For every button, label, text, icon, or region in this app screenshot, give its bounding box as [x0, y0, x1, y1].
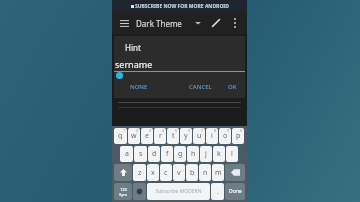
staticText: s	[139, 149, 143, 159]
button[interactable]: 8	[206, 128, 218, 144]
button[interactable]: Backspace	[225, 164, 245, 181]
button[interactable]: 3	[141, 128, 153, 144]
staticText: e	[145, 131, 149, 141]
staticText: g	[178, 149, 183, 159]
button[interactable]: More options	[228, 16, 242, 30]
button[interactable]: n	[199, 164, 211, 181]
button[interactable]: Settings	[133, 183, 146, 200]
button[interactable]: 4	[154, 128, 166, 144]
button[interactable]: d	[148, 146, 160, 162]
staticText: k	[217, 149, 221, 159]
staticText: NONE	[130, 83, 148, 91]
staticText: Subscribe MODERN	[155, 188, 202, 195]
staticText: o	[223, 131, 228, 141]
staticText: CANCEL	[189, 83, 212, 91]
staticText: 8	[214, 128, 217, 133]
staticText: username	[118, 92, 147, 100]
staticText: 1	[123, 128, 126, 133]
staticText: m	[215, 168, 222, 178]
button[interactable]: Dark Theme	[136, 18, 182, 29]
button[interactable]: v	[173, 164, 185, 181]
staticText: w	[131, 131, 137, 141]
button[interactable]: f	[161, 146, 173, 162]
staticText: Done	[229, 188, 242, 195]
staticText: OK	[228, 83, 237, 91]
staticText: l	[231, 149, 233, 159]
button[interactable]: c	[160, 164, 172, 181]
staticText: x	[151, 168, 155, 178]
staticText: Sym	[119, 192, 127, 197]
staticText: p	[236, 131, 241, 141]
staticText: d	[152, 149, 157, 159]
staticText: j	[205, 149, 207, 159]
button[interactable]: 1	[114, 128, 127, 144]
button[interactable]: Subscribe MODERN	[147, 183, 210, 200]
button[interactable]: Menu	[117, 16, 131, 30]
button[interactable]: Edit note	[229, 56, 245, 72]
staticText: c	[164, 168, 168, 178]
staticText: 123	[120, 187, 127, 192]
button[interactable]: k	[213, 146, 225, 162]
staticText: 6	[188, 128, 191, 133]
staticText: Hint	[125, 42, 141, 53]
button[interactable]: l	[226, 146, 238, 162]
staticText: 4	[162, 128, 165, 133]
button[interactable]: Symbols	[114, 183, 132, 200]
staticText: i	[211, 131, 213, 141]
button[interactable]: Dropdown	[192, 17, 204, 29]
button[interactable]: j	[200, 146, 212, 162]
button[interactable]: 0	[232, 128, 244, 144]
staticText: 3	[149, 128, 152, 133]
staticText: y	[184, 131, 188, 141]
button[interactable]: NONE	[128, 81, 150, 93]
button[interactable]: 2	[128, 128, 140, 144]
staticText: z	[138, 168, 142, 178]
staticText: 5	[175, 128, 178, 133]
button[interactable]: x	[147, 164, 159, 181]
button[interactable]: b	[186, 164, 198, 181]
staticText: t	[172, 131, 175, 141]
button[interactable]: OK	[226, 81, 239, 93]
staticText: SUBSCRIBE NOW FOR MORE ANDROID	[135, 3, 229, 10]
staticText: a	[125, 149, 129, 159]
button[interactable]: 9	[219, 128, 231, 144]
staticText: .	[217, 187, 219, 197]
staticText: 9	[227, 128, 230, 133]
button[interactable]: s	[134, 146, 147, 162]
staticText: r	[159, 131, 162, 141]
staticText: f	[166, 149, 169, 159]
button[interactable]: 7	[193, 128, 205, 144]
button[interactable]: Shift	[114, 164, 132, 181]
staticText: sername	[115, 58, 153, 70]
staticText: b	[190, 168, 195, 178]
button[interactable]: Done	[225, 183, 245, 200]
button[interactable]: CANCEL	[187, 81, 214, 93]
staticText: 2	[136, 128, 139, 133]
button[interactable]: a	[120, 146, 133, 162]
button[interactable]: .	[211, 183, 224, 200]
staticText: u	[197, 131, 202, 141]
button[interactable]: h	[187, 146, 199, 162]
staticText: 7	[201, 128, 204, 133]
button[interactable]: g	[174, 146, 186, 162]
button[interactable]: m	[212, 164, 224, 181]
staticText: n	[203, 168, 208, 178]
staticText: q	[118, 131, 123, 141]
staticText: 0	[240, 128, 243, 133]
button[interactable]: 6	[180, 128, 192, 144]
staticText: v	[177, 168, 181, 178]
button[interactable]: Edit	[208, 15, 224, 31]
staticText: h	[191, 149, 196, 159]
button[interactable]: z	[133, 164, 146, 181]
button[interactable]: 5	[167, 128, 179, 144]
